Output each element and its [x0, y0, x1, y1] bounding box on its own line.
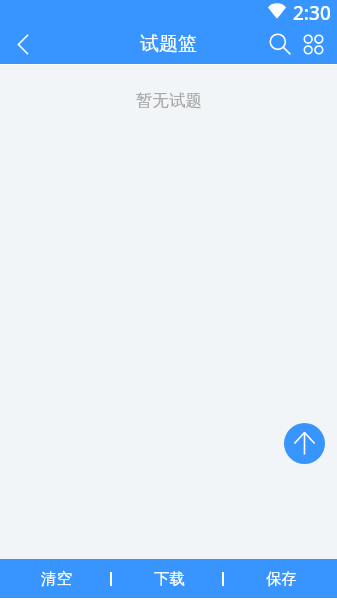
button[interactable]: Back — [3, 24, 43, 64]
button[interactable]: 下载 — [113, 559, 225, 598]
button[interactable]: Search — [262, 27, 296, 61]
button[interactable]: 清空 — [0, 559, 113, 598]
button[interactable]: More options — [296, 27, 330, 61]
staticText: 暂无试题 — [136, 90, 202, 111]
staticText: 2:30 — [293, 0, 331, 24]
button[interactable]: Scroll to top — [284, 423, 325, 464]
staticText: 保存 — [266, 569, 297, 589]
button[interactable]: 保存 — [225, 559, 337, 598]
staticText: 清空 — [41, 569, 72, 589]
staticText: 试题篮 — [140, 32, 197, 56]
staticText: 下载 — [154, 569, 185, 589]
